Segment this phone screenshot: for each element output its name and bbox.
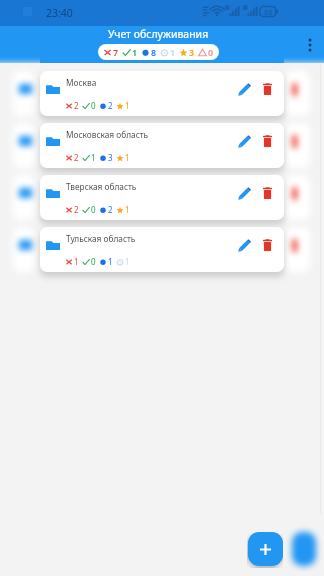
staticText: 0 xyxy=(91,100,96,111)
button[interactable]: Add xyxy=(248,532,283,566)
staticText: 2 xyxy=(74,204,79,215)
staticText: 8 xyxy=(151,46,157,58)
staticText: Московская область xyxy=(66,129,149,140)
button[interactable]: Edit xyxy=(234,235,254,255)
staticText: 2 xyxy=(74,152,79,163)
button[interactable]: Москва xyxy=(40,71,284,116)
staticText: 1 xyxy=(125,256,130,267)
button[interactable]: 7 xyxy=(98,44,219,60)
button[interactable]: Тверская область xyxy=(40,175,284,220)
button[interactable]: Тульская область xyxy=(40,227,284,272)
staticText: Учет обслуживания xyxy=(108,27,209,41)
staticText: Тверская область xyxy=(66,181,137,192)
staticText: 3 xyxy=(189,46,195,58)
staticText: 1 xyxy=(108,256,113,267)
staticText: 3 xyxy=(108,152,113,163)
staticText: 1 xyxy=(125,204,130,215)
button[interactable]: Delete xyxy=(257,131,277,151)
staticText: 2 xyxy=(108,204,113,215)
staticText: 1 xyxy=(125,100,130,111)
button[interactable]: Московская область xyxy=(40,123,284,168)
button[interactable]: Edit xyxy=(234,131,254,151)
staticText: 23:40 xyxy=(46,6,73,20)
staticText: 0 xyxy=(208,46,214,58)
staticText: 1 xyxy=(74,256,79,267)
staticText: 1 xyxy=(170,46,176,58)
staticText: 0 xyxy=(91,204,96,215)
staticText: Москва xyxy=(66,77,97,88)
staticText: 2 xyxy=(108,100,113,111)
staticText: 2 xyxy=(74,100,79,111)
button[interactable]: Delete xyxy=(257,183,277,203)
button[interactable]: Delete xyxy=(257,235,277,255)
staticText: 1 xyxy=(132,46,138,58)
staticText: Тульская область xyxy=(66,233,136,244)
button[interactable]: Delete xyxy=(257,79,277,99)
button[interactable]: Edit xyxy=(234,79,254,99)
button[interactable]: Edit xyxy=(234,183,254,203)
button[interactable]: More options xyxy=(298,33,322,57)
staticText: 50 xyxy=(264,7,273,17)
staticText: 1 xyxy=(125,152,130,163)
staticText: 0 xyxy=(91,256,96,267)
staticText: 7 xyxy=(113,46,119,58)
staticText: 1 xyxy=(91,152,96,163)
